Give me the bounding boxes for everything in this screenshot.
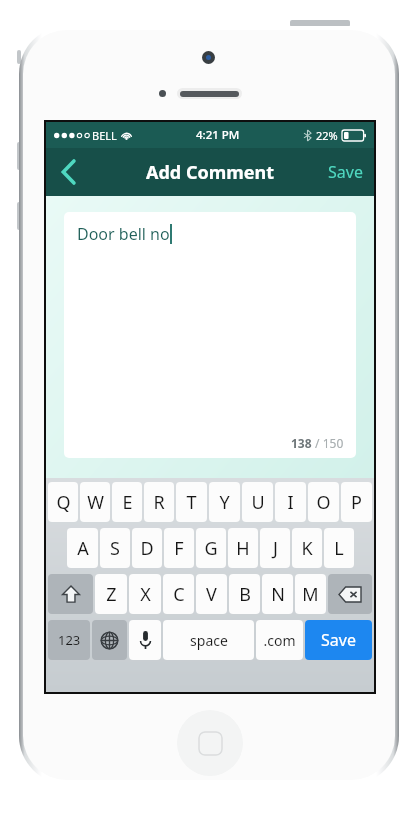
- button[interactable]: Dictate: [129, 620, 161, 660]
- staticText: G: [204, 536, 218, 561]
- button[interactable]: Backspace: [328, 574, 372, 614]
- staticText: Z: [106, 582, 117, 607]
- staticText: Y: [219, 490, 230, 515]
- button[interactable]: W: [80, 482, 110, 522]
- button[interactable]: D: [132, 528, 162, 568]
- staticText: K: [301, 536, 313, 561]
- staticText: P: [351, 490, 362, 515]
- button[interactable]: R: [144, 482, 174, 522]
- button[interactable]: Y: [209, 482, 240, 522]
- staticText: M: [302, 582, 319, 607]
- staticText: Q: [56, 490, 71, 515]
- staticText: .com: [263, 631, 296, 650]
- button[interactable]: O: [308, 482, 339, 522]
- button[interactable]: L: [324, 528, 354, 568]
- staticText: F: [174, 536, 184, 561]
- button[interactable]: C: [163, 574, 194, 614]
- staticText: B: [239, 582, 251, 607]
- button[interactable]: T: [176, 482, 207, 522]
- staticText: S: [110, 536, 120, 561]
- staticText: I: [287, 490, 294, 515]
- button[interactable]: Change keyboard: [92, 620, 127, 660]
- staticText: D: [140, 536, 154, 561]
- staticText: BELL: [92, 128, 117, 143]
- staticText: / 150: [312, 435, 344, 451]
- other: Home: [177, 710, 243, 776]
- button[interactable]: H: [228, 528, 258, 568]
- staticText: J: [273, 536, 278, 561]
- button[interactable]: Shift: [48, 574, 93, 614]
- staticText: 4:21 PM: [196, 127, 240, 143]
- button[interactable]: M: [295, 574, 326, 614]
- button[interactable]: space: [163, 620, 254, 660]
- button[interactable]: Q: [48, 482, 78, 522]
- button[interactable]: Door bell no: [64, 212, 356, 458]
- staticText: Save: [321, 629, 356, 651]
- button[interactable]: A: [67, 528, 98, 568]
- staticText: 22%: [316, 128, 338, 143]
- button[interactable]: E: [112, 482, 142, 522]
- button[interactable]: Z: [95, 574, 127, 614]
- staticText: Door bell no: [77, 223, 170, 245]
- button[interactable]: B: [229, 574, 260, 614]
- button[interactable]: F: [164, 528, 194, 568]
- staticText: U: [251, 490, 265, 515]
- staticText: W: [87, 490, 104, 515]
- button[interactable]: Save: [317, 148, 374, 196]
- staticText: 123: [58, 631, 81, 649]
- button[interactable]: S: [100, 528, 130, 568]
- staticText: Save: [328, 161, 363, 183]
- button[interactable]: V: [196, 574, 227, 614]
- staticText: Add Comment: [146, 160, 275, 185]
- button[interactable]: J: [260, 528, 290, 568]
- button[interactable]: 123: [48, 620, 90, 660]
- staticText: V: [206, 582, 217, 607]
- staticText: E: [122, 490, 133, 515]
- button[interactable]: U: [242, 482, 273, 522]
- staticText: X: [140, 582, 151, 607]
- button[interactable]: G: [196, 528, 226, 568]
- staticText: H: [236, 536, 250, 561]
- button[interactable]: Back: [46, 148, 90, 196]
- staticText: N: [271, 582, 285, 607]
- staticText: C: [173, 582, 185, 607]
- staticText: T: [186, 490, 197, 515]
- staticText: 138: [291, 435, 312, 451]
- staticText: space: [190, 631, 228, 650]
- button[interactable]: K: [292, 528, 322, 568]
- staticText: R: [153, 490, 165, 515]
- button[interactable]: P: [341, 482, 372, 522]
- button[interactable]: X: [129, 574, 161, 614]
- button[interactable]: .com: [256, 620, 303, 660]
- staticText: L: [334, 536, 344, 561]
- staticText: O: [316, 490, 331, 515]
- staticText: A: [77, 536, 89, 561]
- button[interactable]: Save: [305, 620, 372, 660]
- button[interactable]: N: [262, 574, 293, 614]
- button[interactable]: I: [275, 482, 306, 522]
